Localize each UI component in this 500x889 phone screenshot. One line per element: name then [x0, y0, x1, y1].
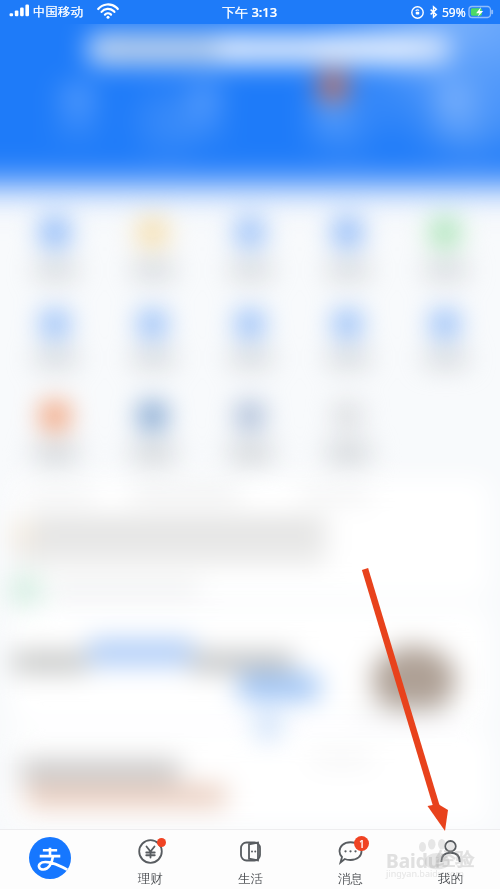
staticText: 理财 — [138, 871, 163, 887]
staticText: 中国移动 — [33, 4, 83, 20]
staticText: 消息 — [338, 871, 363, 887]
button[interactable]: 我的 — [400, 830, 500, 889]
staticText: 我的 — [438, 871, 463, 887]
staticText: 下午 3:13 — [222, 3, 278, 21]
staticText: Baidu — [386, 848, 441, 874]
staticText: jingyan.baidu.com — [386, 867, 464, 879]
staticText: 生活 — [238, 871, 263, 887]
staticText: 59% — [442, 4, 466, 20]
button[interactable]: 理财 — [100, 830, 200, 889]
button[interactable]: 消息 — [300, 830, 400, 889]
button[interactable]: 支付宝首页 — [0, 830, 100, 889]
button[interactable]: 生活 — [200, 830, 300, 889]
staticText: 经验 — [436, 848, 474, 872]
staticText: 1 — [359, 837, 365, 851]
